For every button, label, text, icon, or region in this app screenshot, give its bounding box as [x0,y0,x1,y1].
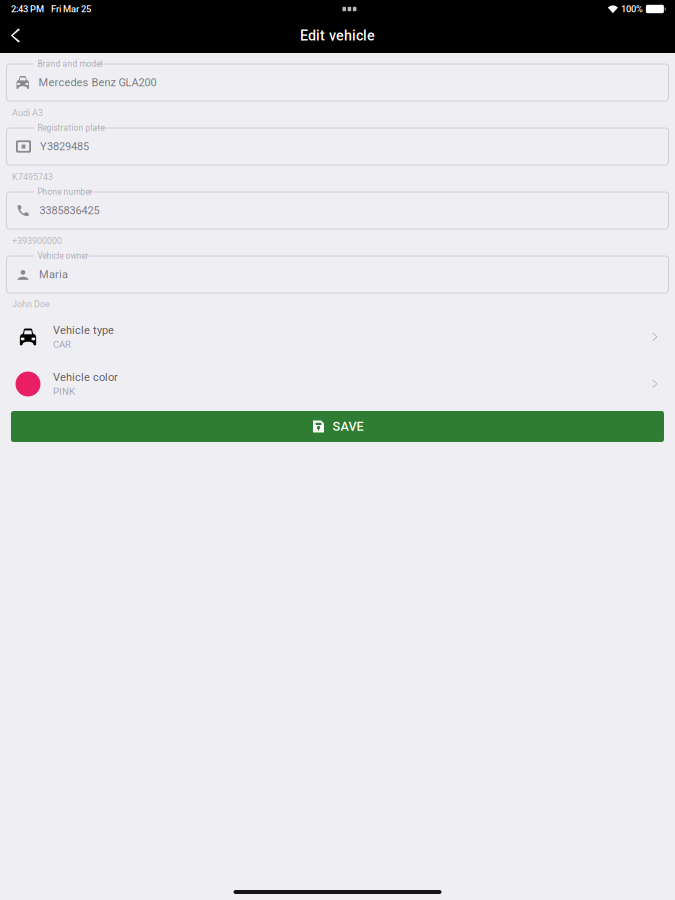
staticText: Maria [39,268,68,281]
staticText: Vehicle type [53,324,114,337]
staticText: Edit vehicle [300,27,375,44]
button[interactable]: SAVE [11,411,664,442]
staticText: CAR [53,339,71,350]
staticText: Registration plate [37,123,104,133]
staticText: Audi A3 [12,108,43,118]
staticText: 100% [621,3,643,14]
staticText: K7495743 [12,172,53,182]
staticText: SAVE [332,419,363,434]
staticText: Phone number [37,187,92,197]
button[interactable]: Back [0,18,42,53]
button[interactable]: Vehicle color [0,360,675,407]
staticText: 3385836425 [39,204,99,217]
staticText: Fri Mar 25 [51,3,91,14]
staticText: Mercedes Benz GLA200 [38,76,156,89]
button[interactable]: Vehicle type [0,313,675,360]
staticText: 2:43 PM [11,3,44,14]
staticText: Y3829485 [40,140,89,153]
staticText: Vehicle owner [37,251,88,261]
staticText: John Doe [12,299,50,309]
staticText: +393900000 [12,236,62,246]
staticText: Vehicle color [53,371,118,384]
staticText: Brand and model [37,59,102,69]
staticText: PINK [53,386,75,397]
